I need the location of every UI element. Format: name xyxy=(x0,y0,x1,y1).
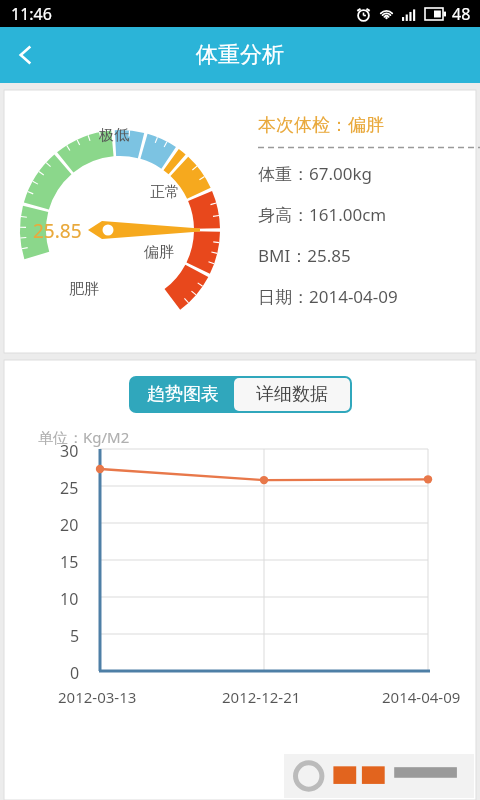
staticText: 2012-03-13 xyxy=(58,687,137,707)
staticText: 体重：67.00kg xyxy=(258,162,372,185)
staticText: 身高：161.00cm xyxy=(258,203,387,226)
staticText: 日期：2014-04-09 xyxy=(258,285,398,308)
button[interactable]: 详细数据 xyxy=(234,378,350,411)
staticText: 详细数据 xyxy=(256,383,328,406)
staticText: 正常 xyxy=(150,183,180,202)
staticText: 本次体检：偏胖 xyxy=(258,114,384,137)
staticText: 30 xyxy=(60,440,79,462)
staticText: BMI：25.85 xyxy=(258,244,351,267)
staticText: 0 xyxy=(70,662,80,684)
staticText: 肥胖 xyxy=(69,280,99,299)
staticText: 单位：Kg/M2 xyxy=(38,427,130,447)
staticText: 15 xyxy=(60,551,79,573)
staticText: 25 xyxy=(60,477,79,499)
staticText: 偏胖 xyxy=(144,243,174,262)
button[interactable]: 趋势图表 xyxy=(131,378,234,411)
staticText: 20 xyxy=(60,514,79,536)
staticText: 48 xyxy=(452,3,471,25)
staticText: 趋势图表 xyxy=(147,383,219,406)
staticText: 极低 xyxy=(99,126,129,145)
button[interactable]: Back xyxy=(0,29,52,81)
staticText: 10 xyxy=(60,588,79,610)
staticText: 5 xyxy=(70,625,80,647)
staticText: 25.85 xyxy=(33,218,82,244)
staticText: 11:46 xyxy=(11,3,52,25)
staticText: 体重分析 xyxy=(196,41,284,69)
staticText: 2014-04-09 xyxy=(382,687,461,707)
staticText: 2012-12-21 xyxy=(222,687,301,707)
